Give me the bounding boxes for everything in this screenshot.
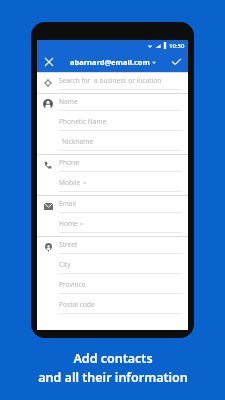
staticText: Name (59, 97, 78, 106)
button[interactable]: Nickname (37, 134, 188, 154)
button[interactable]: Phonetic Name (37, 114, 188, 134)
button[interactable]: Province (37, 277, 188, 297)
button[interactable]: Close (37, 51, 61, 72)
staticText: Postal code (59, 300, 95, 309)
staticText: Home (59, 219, 78, 228)
button[interactable]: Street (37, 237, 188, 257)
staticText: Province (59, 280, 86, 289)
button[interactable]: Search for a business or location (37, 73, 188, 93)
staticText: Email (59, 199, 76, 208)
button[interactable]: Mobile (37, 175, 188, 195)
button[interactable]: Postal code (37, 297, 188, 317)
button[interactable]: abarnard@email.com (70, 57, 156, 67)
staticText: Nickname (62, 137, 94, 146)
button[interactable]: Home (37, 216, 188, 236)
button[interactable]: Save (164, 51, 188, 72)
staticText: Mobile (59, 178, 81, 187)
staticText: abarnard@email.com (70, 57, 150, 67)
staticText: Street (59, 240, 78, 249)
button[interactable]: Email (37, 196, 188, 216)
button[interactable]: Name (37, 94, 188, 114)
staticText: Search for a business or location (59, 76, 162, 85)
button[interactable]: Phone (37, 155, 188, 175)
staticText: 10:50 (169, 42, 185, 50)
staticText: City (59, 260, 71, 269)
staticText: Add contacts (73, 350, 153, 367)
button[interactable]: City (37, 257, 188, 277)
staticText: and all their information (38, 369, 188, 386)
staticText: Phone (59, 158, 79, 167)
staticText: Phonetic Name (59, 117, 107, 126)
